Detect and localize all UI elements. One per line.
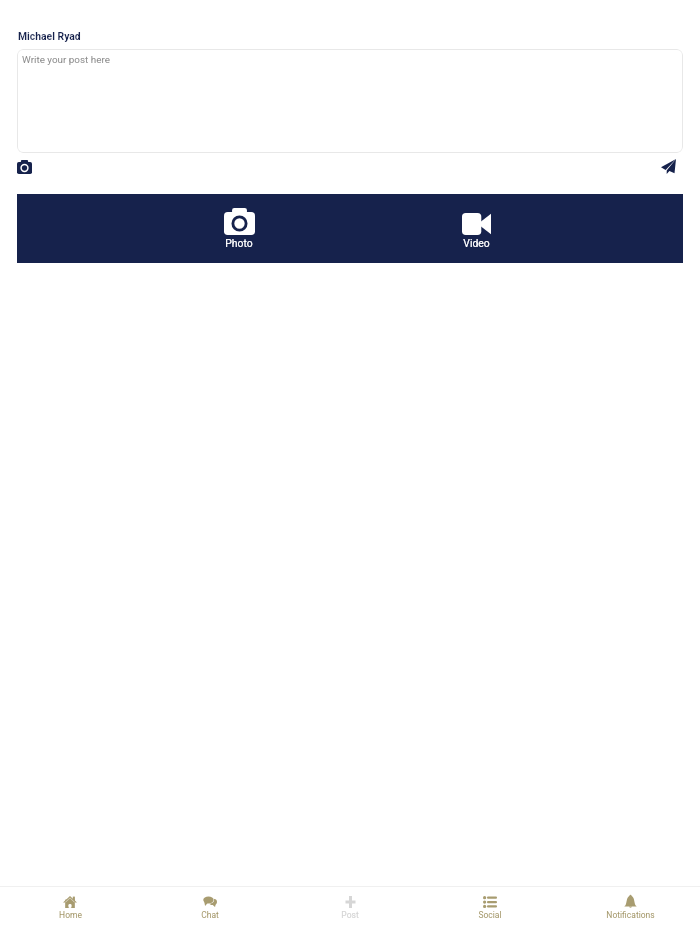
staticText: Write your post here bbox=[22, 54, 110, 66]
button[interactable]: Notifications bbox=[560, 887, 700, 920]
button[interactable]: Send post bbox=[652, 150, 685, 183]
staticText: Photo bbox=[225, 237, 253, 249]
staticText: Video bbox=[463, 237, 490, 249]
button[interactable]: Write your post here bbox=[17, 49, 683, 153]
staticText: Social bbox=[478, 910, 502, 920]
button[interactable]: Post bbox=[280, 887, 420, 920]
button[interactable]: Chat bbox=[140, 887, 280, 920]
button[interactable]: Home bbox=[0, 887, 140, 920]
staticText: Notifications bbox=[606, 910, 655, 920]
staticText: Home bbox=[59, 910, 82, 920]
button[interactable]: Video bbox=[446, 208, 506, 249]
button[interactable]: Add photo bbox=[8, 150, 41, 183]
staticText: Chat bbox=[201, 910, 219, 920]
button[interactable]: Photo bbox=[209, 208, 269, 249]
staticText: Michael Ryad bbox=[18, 30, 81, 42]
button[interactable]: Social bbox=[420, 887, 560, 920]
staticText: Post bbox=[341, 910, 359, 920]
